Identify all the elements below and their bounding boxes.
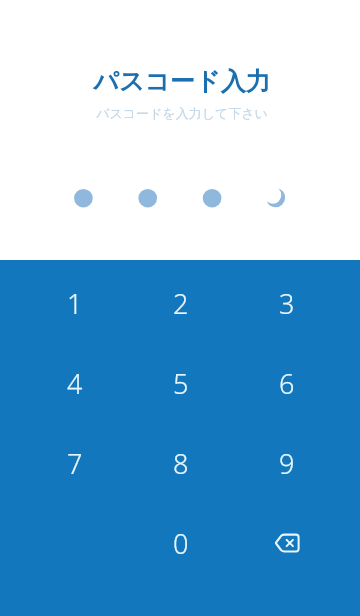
button[interactable]: 6 (234, 343, 340, 423)
button[interactable]: 8 (128, 423, 234, 503)
button[interactable]: 1 (22, 263, 128, 343)
staticText: 9 (279, 445, 295, 482)
staticText: 6 (279, 365, 295, 402)
staticText: 7 (67, 445, 83, 482)
button[interactable]: 2 (128, 263, 234, 343)
staticText: 3 (279, 285, 295, 322)
staticText: 8 (173, 445, 189, 482)
button[interactable]: 4 (22, 343, 128, 423)
button[interactable]: 0 (128, 503, 234, 583)
staticText: 2 (173, 285, 189, 322)
staticText: 0 (173, 525, 189, 562)
staticText: 4 (67, 365, 83, 402)
button[interactable]: 3 (234, 263, 340, 343)
staticText: パスコードを入力して下さい (96, 105, 268, 121)
button[interactable]: 5 (128, 343, 234, 423)
other: Passcode indicator (0, 0, 360, 260)
button[interactable]: 7 (22, 423, 128, 503)
other: Delete (274, 533, 300, 553)
staticText: パスコード入力 (93, 66, 271, 97)
button[interactable]: 9 (234, 423, 340, 503)
staticText: 5 (173, 365, 189, 402)
button[interactable]: Delete (234, 503, 340, 583)
staticText: 1 (67, 285, 83, 322)
